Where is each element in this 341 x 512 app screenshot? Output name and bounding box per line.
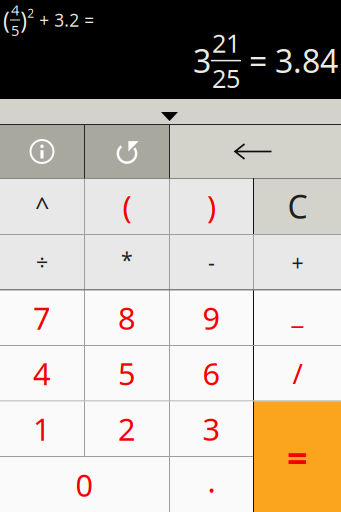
button[interactable]: C bbox=[254, 178, 341, 234]
button[interactable]: Reset bbox=[85, 125, 169, 178]
staticText: / bbox=[292, 355, 302, 392]
staticText: 4 bbox=[11, 0, 19, 19]
button[interactable]: ÷ bbox=[0, 235, 84, 289]
button[interactable]: 6 bbox=[170, 346, 253, 400]
staticText: ( bbox=[3, 5, 10, 35]
staticText: * bbox=[121, 245, 133, 273]
staticText: 3 bbox=[193, 39, 211, 82]
staticText: 6 bbox=[202, 353, 220, 394]
button[interactable]: 8 bbox=[85, 290, 169, 345]
staticText: 25 bbox=[212, 61, 240, 95]
button[interactable]: 0 bbox=[0, 457, 169, 512]
staticText: 3 bbox=[202, 408, 220, 449]
button[interactable]: = bbox=[254, 401, 341, 512]
staticText: - bbox=[208, 248, 215, 276]
staticText: 5 bbox=[118, 353, 136, 394]
button[interactable]: 2 bbox=[85, 401, 169, 456]
staticText: ÷ bbox=[36, 248, 48, 276]
button[interactable]: 9 bbox=[170, 290, 253, 345]
button[interactable]: Backspace bbox=[170, 125, 341, 178]
staticText: 5 bbox=[11, 20, 19, 40]
button[interactable]: ^ bbox=[0, 178, 84, 234]
staticText: 0 bbox=[75, 464, 93, 505]
staticText: ) bbox=[207, 186, 216, 227]
button[interactable]: - bbox=[170, 235, 253, 289]
button[interactable]: 7 bbox=[0, 290, 84, 345]
staticText: + bbox=[291, 248, 303, 276]
staticText: + 3.2 = bbox=[34, 8, 94, 31]
button[interactable]: ( bbox=[85, 178, 169, 234]
staticText: 21 bbox=[212, 26, 240, 60]
button[interactable]: ) bbox=[170, 178, 253, 234]
staticText: . bbox=[207, 460, 215, 501]
staticText: C bbox=[287, 185, 307, 227]
staticText: ) bbox=[20, 5, 27, 35]
button[interactable]: 3 bbox=[170, 401, 253, 456]
button[interactable]: / bbox=[254, 346, 341, 400]
button[interactable]: 1 bbox=[0, 401, 84, 456]
button[interactable]: Info bbox=[0, 125, 84, 178]
staticText: = bbox=[287, 433, 308, 481]
button[interactable]: 5 bbox=[85, 346, 169, 400]
button[interactable]: + bbox=[254, 235, 341, 289]
staticText: 2 bbox=[118, 408, 136, 449]
button[interactable]: . bbox=[170, 457, 253, 512]
button[interactable]: 4 bbox=[0, 346, 84, 400]
staticText: 9 bbox=[202, 297, 220, 338]
staticText: _ bbox=[291, 296, 303, 331]
staticText: 7 bbox=[33, 297, 51, 338]
staticText: 4 bbox=[33, 353, 51, 394]
staticText: 8 bbox=[118, 297, 136, 338]
button[interactable]: * bbox=[85, 235, 169, 289]
button[interactable]: _ bbox=[254, 290, 341, 345]
staticText: 1 bbox=[33, 408, 51, 449]
staticText: 2 bbox=[27, 5, 34, 21]
staticText: = 3.84 bbox=[241, 39, 338, 82]
staticText: ( bbox=[122, 186, 131, 227]
staticText: ^ bbox=[35, 189, 49, 223]
